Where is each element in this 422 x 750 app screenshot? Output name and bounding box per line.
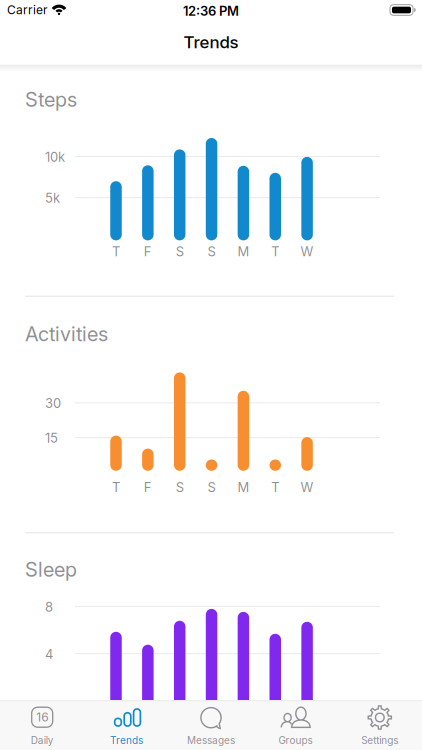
staticText: 10k [45,149,65,165]
staticText: M [237,244,249,259]
button[interactable]: Groups [253,700,338,750]
staticText: Sleep [25,558,77,581]
button[interactable]: Messages [169,700,253,750]
staticText: 15 [45,430,58,446]
staticText: F [144,244,152,259]
staticText: T [112,479,120,495]
staticText: 30 [45,396,61,411]
staticText: S [208,244,216,259]
staticText: W [301,479,314,495]
staticText: T [271,244,279,259]
staticText: W [301,244,314,259]
staticText: 8 [45,599,53,614]
staticText: 16 [36,710,48,724]
staticText: Groups [278,734,312,746]
staticText: Settings [361,734,398,746]
staticText: Daily [31,734,54,746]
button[interactable]: Settings [338,700,422,750]
staticText: 12:36 PM [183,3,239,19]
staticText: 4 [45,646,53,662]
staticText: Trends [110,734,143,746]
staticText: S [208,479,216,495]
staticText: T [112,244,120,259]
staticText: Steps [25,88,77,111]
staticText: Trends [183,32,238,52]
button[interactable]: 16 [0,700,84,750]
staticText: Carrier [7,3,48,17]
staticText: M [237,479,249,495]
staticText: F [144,479,152,495]
button[interactable]: Trends [84,700,169,750]
staticText: S [176,479,184,495]
staticText: S [176,244,184,259]
staticText: Messages [187,734,235,746]
staticText: 5k [45,190,60,206]
staticText: Activities [25,322,108,346]
staticText: T [271,479,279,495]
